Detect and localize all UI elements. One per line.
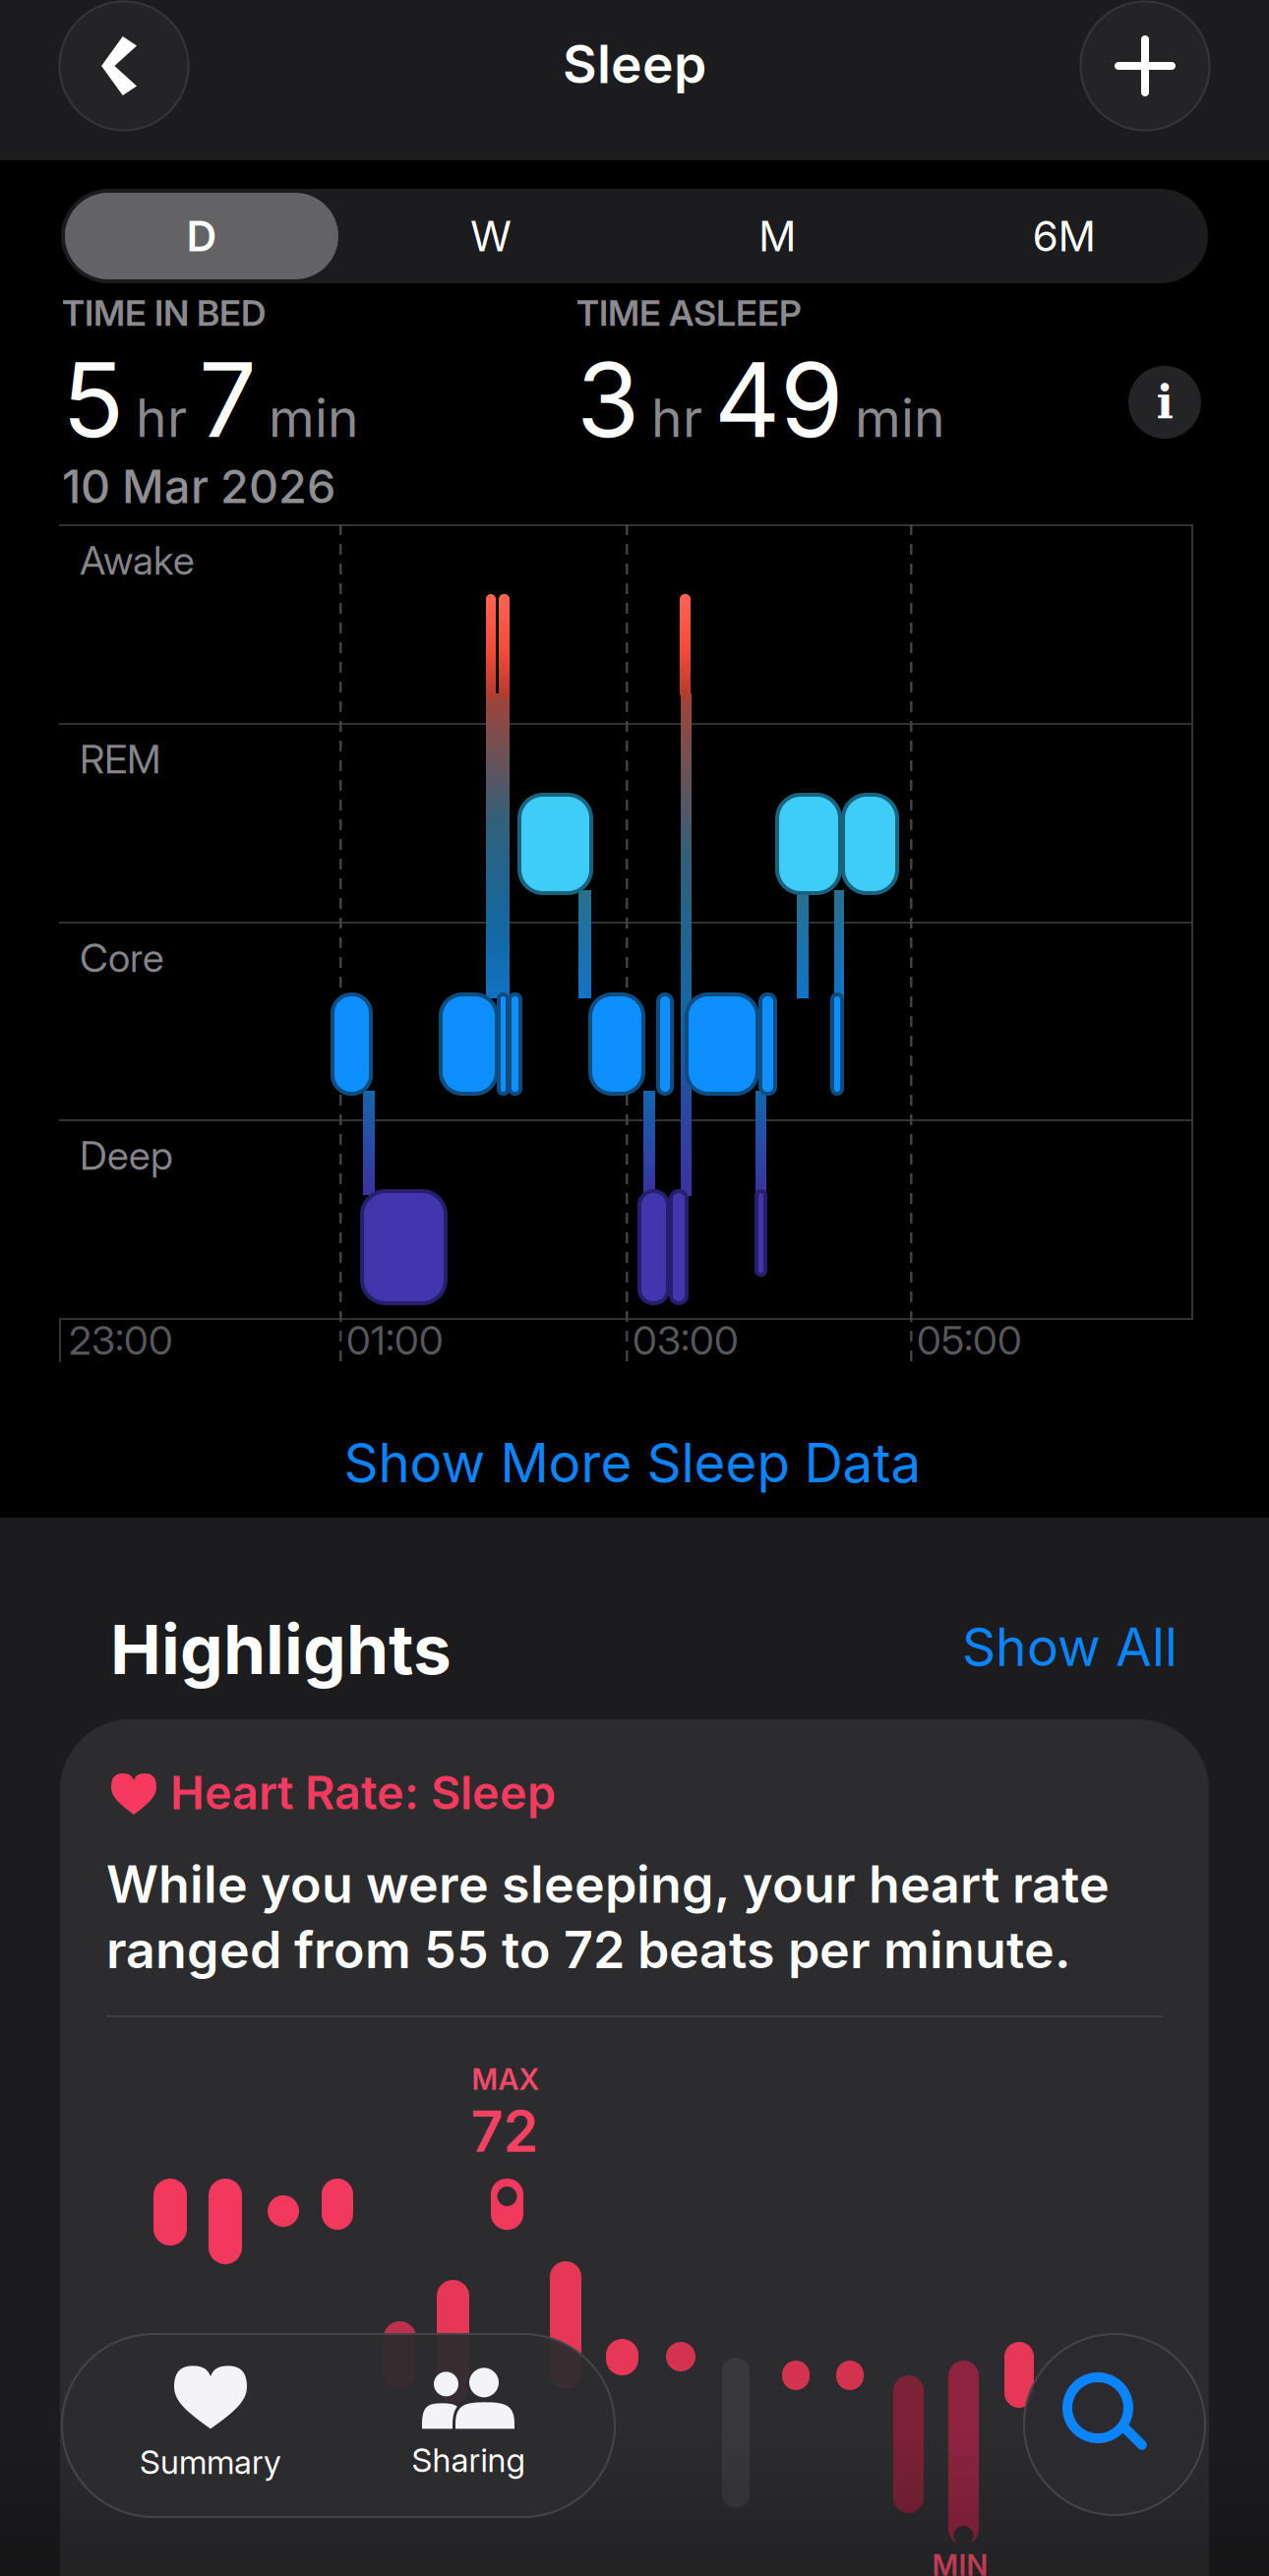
staticText: min xyxy=(855,387,945,449)
staticText: 49 xyxy=(714,339,843,460)
staticText: M xyxy=(758,211,797,261)
button[interactable]: Search xyxy=(1024,2334,1205,2515)
button[interactable]: Back xyxy=(60,1,188,130)
staticText: Core xyxy=(80,934,164,981)
staticText: 6M xyxy=(1032,211,1096,261)
staticText: Deep xyxy=(80,1132,173,1179)
button[interactable]: Add Data xyxy=(1081,1,1209,130)
staticText: i xyxy=(1156,376,1173,429)
staticText: Awake xyxy=(80,537,195,583)
button[interactable]: W xyxy=(348,189,634,283)
staticText: hr xyxy=(651,387,702,449)
staticText: min xyxy=(269,387,359,449)
staticText: 03:00 xyxy=(633,1317,739,1363)
staticText: REM xyxy=(80,736,160,782)
staticText: Show All xyxy=(962,1616,1178,1678)
staticText: 7 xyxy=(199,339,257,460)
button[interactable]: Show More Sleep Data xyxy=(344,1431,921,1494)
staticText: While you were sleeping, your heart rate… xyxy=(106,1854,1110,1980)
staticText: MIN xyxy=(932,2548,988,2576)
staticText: hr xyxy=(136,387,187,449)
staticText: MAX xyxy=(472,2062,540,2096)
staticText: 3 xyxy=(576,339,639,460)
button[interactable]: Sharing xyxy=(335,2332,601,2515)
button[interactable]: Show All xyxy=(962,1616,1178,1678)
staticText: Show More Sleep Data xyxy=(344,1431,921,1494)
staticText: Highlights xyxy=(110,1609,452,1690)
staticText: Heart Rate: Sleep xyxy=(170,1766,556,1820)
staticText: Sleep xyxy=(563,33,706,95)
staticText: 72 xyxy=(471,2098,539,2165)
button[interactable]: About Sleep xyxy=(1128,366,1201,439)
staticText: 5 xyxy=(62,339,124,460)
staticText: 23:00 xyxy=(69,1317,173,1363)
staticText: 01:00 xyxy=(346,1317,444,1363)
staticText: 05:00 xyxy=(917,1317,1022,1363)
button[interactable]: Summary xyxy=(78,2332,343,2515)
staticText: TIME ASLEEP xyxy=(576,292,802,334)
staticText: 10 Mar 2026 xyxy=(62,459,335,514)
button[interactable]: 6M xyxy=(921,189,1208,283)
button[interactable]: Heart Rate: Sleep highlight xyxy=(60,1719,1209,2576)
staticText: W xyxy=(470,211,512,261)
staticText: D xyxy=(186,211,217,261)
staticText: TIME IN BED xyxy=(62,292,266,334)
button[interactable]: M xyxy=(634,189,921,283)
button[interactable]: D xyxy=(65,193,338,279)
staticText: Summary xyxy=(140,2443,281,2481)
staticText: Sharing xyxy=(412,2441,525,2479)
